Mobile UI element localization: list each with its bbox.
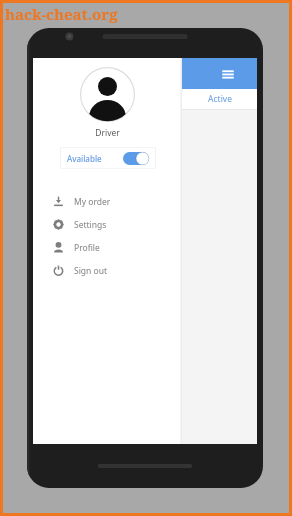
staticText: hack-cheat.org xyxy=(5,4,118,24)
staticText: Available xyxy=(67,153,102,164)
button[interactable]: Sign out xyxy=(33,259,182,282)
button[interactable]: Open navigation drawer xyxy=(220,66,236,82)
staticText: Driver xyxy=(95,127,120,139)
button[interactable]: Open navigation drawer xyxy=(182,58,257,89)
button[interactable]: My order xyxy=(33,190,182,213)
staticText: Profile xyxy=(74,242,100,254)
staticText: Active xyxy=(208,93,232,105)
button[interactable]: Profile xyxy=(33,236,182,259)
button[interactable]: Active xyxy=(182,89,257,109)
button[interactable]: Settings xyxy=(33,213,182,236)
staticText: Sign out xyxy=(74,265,108,277)
button[interactable]: Available xyxy=(60,147,156,169)
staticText: My order xyxy=(74,196,111,208)
staticText: Settings xyxy=(74,219,107,231)
